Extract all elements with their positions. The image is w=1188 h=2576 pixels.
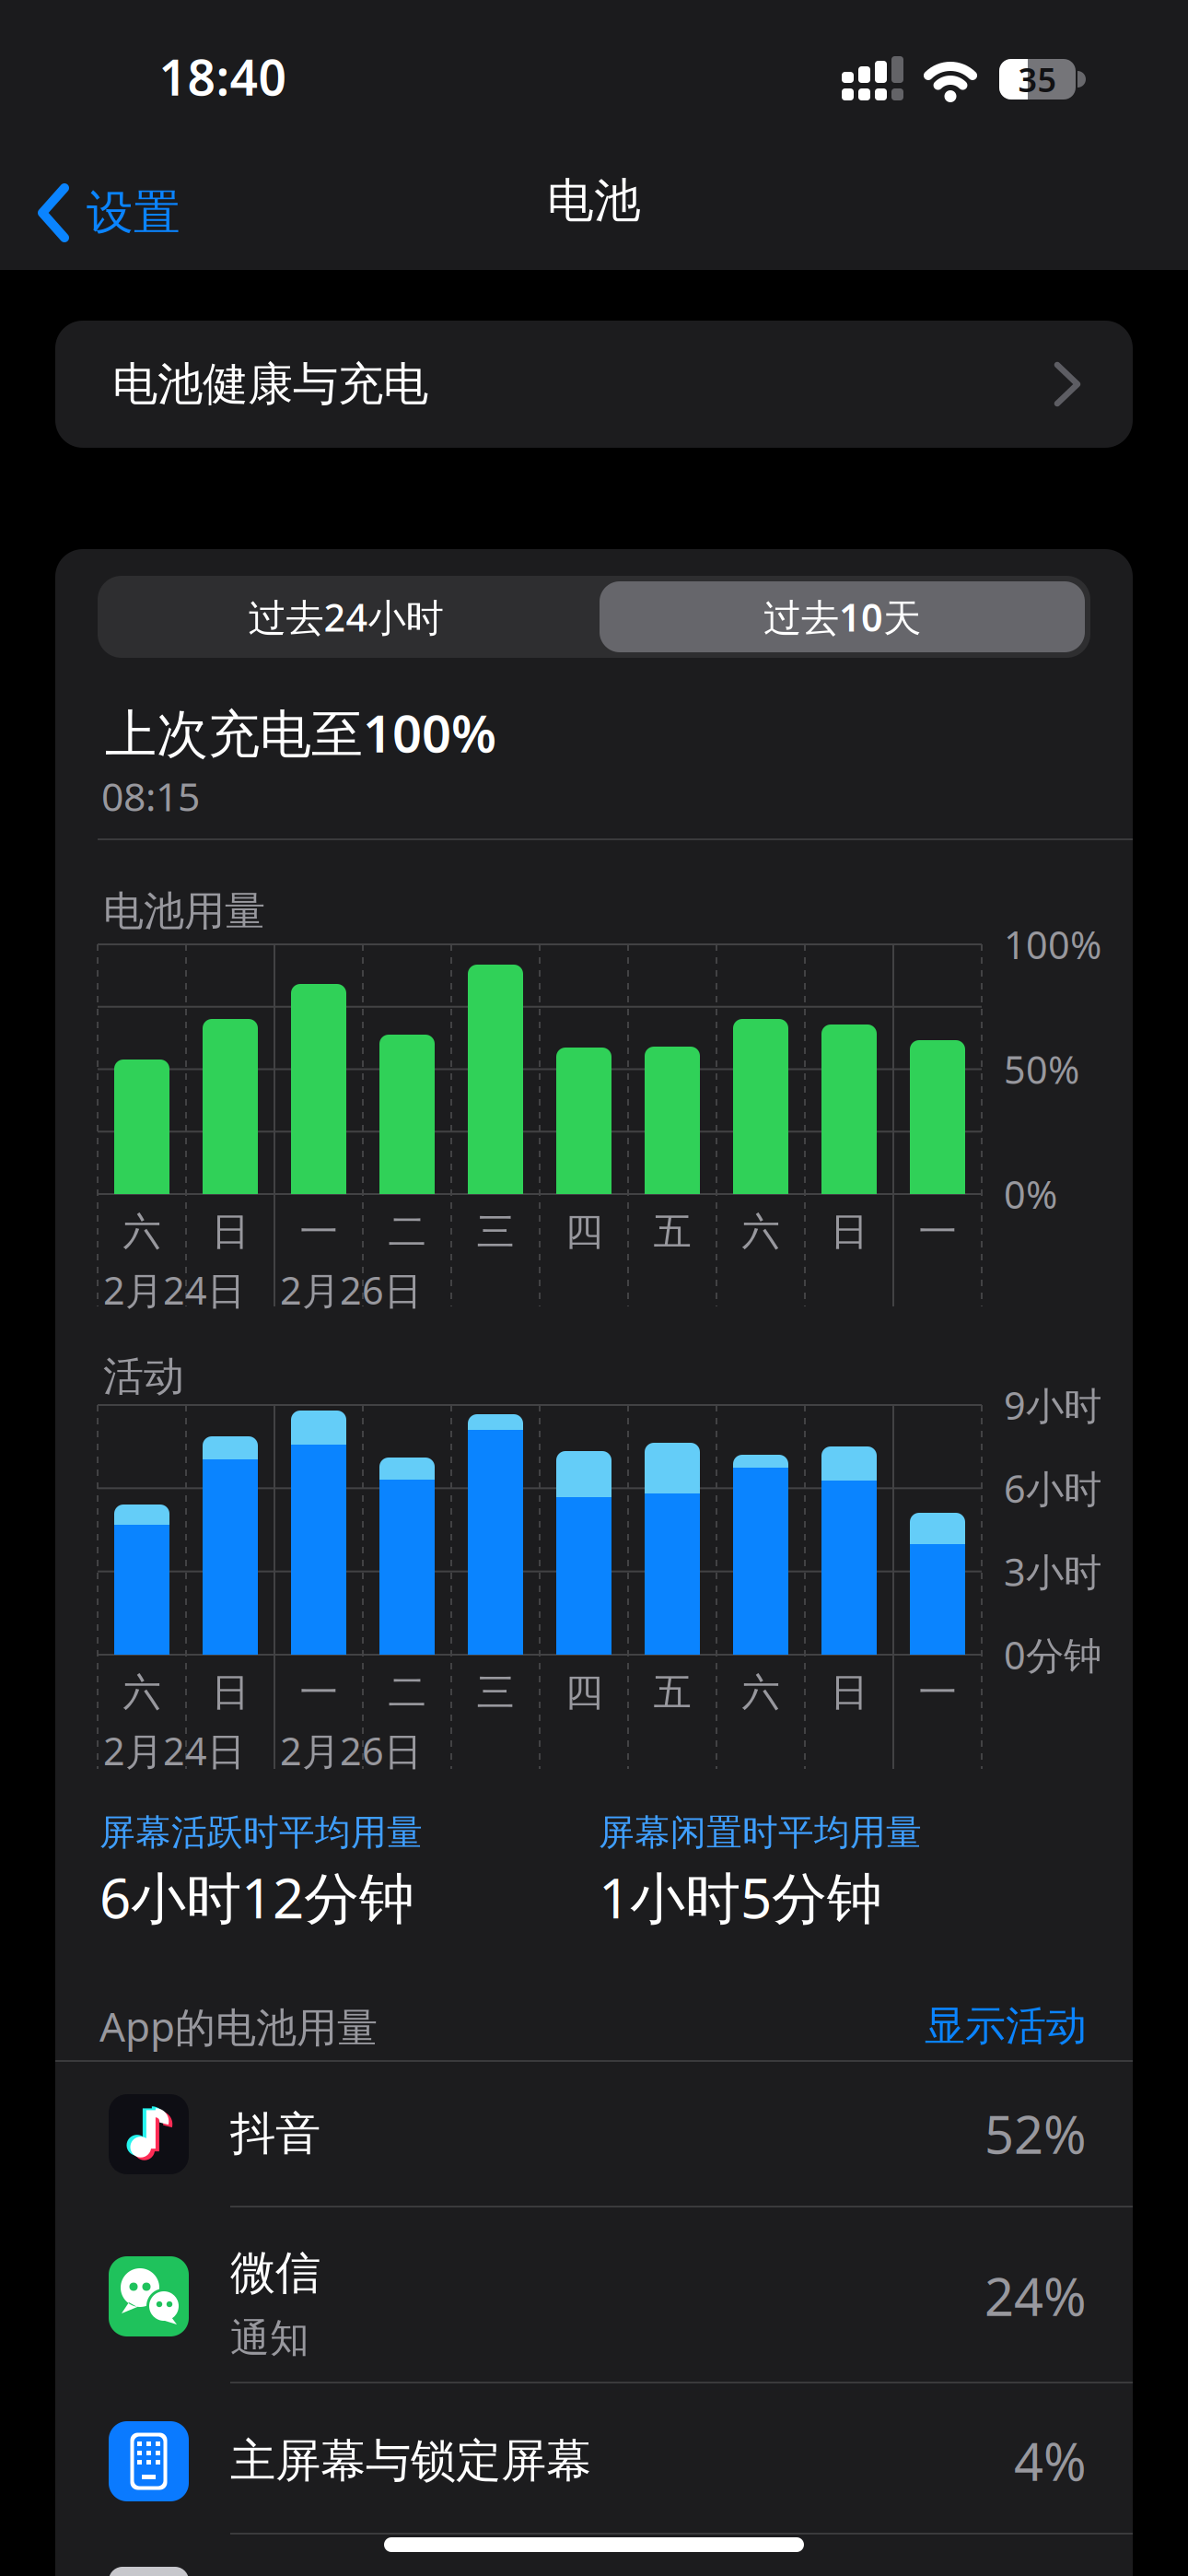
staticText: 电池 [547, 172, 641, 229]
staticText: 1小时5分钟 [599, 1860, 882, 1934]
staticText: 活动 [103, 1352, 184, 1401]
staticText: 抖音 [230, 2106, 320, 2162]
staticText: 主屏幕与锁定屏幕 [230, 2433, 591, 2489]
staticText: 100% [1004, 919, 1101, 970]
button[interactable]: 抖音 [55, 2062, 1133, 2206]
staticText: 0% [1004, 1169, 1057, 1219]
staticText: 日 [211, 1669, 249, 1716]
staticText: 日 [830, 1669, 868, 1716]
staticText: 电池健康与充电 [112, 356, 428, 412]
staticText: 二 [388, 1208, 426, 1255]
button[interactable]: 主屏幕与锁定屏幕 [55, 2383, 1133, 2533]
staticText: 3小时 [1004, 1546, 1101, 1597]
staticText: 设置 [87, 184, 181, 241]
staticText: 24% [984, 2262, 1087, 2330]
staticText: 08:15 [101, 770, 200, 822]
staticText: 2月26日 [280, 1725, 422, 1776]
staticText: 五 [653, 1208, 691, 1255]
staticText: 4% [1014, 2427, 1087, 2495]
staticText: 三 [477, 1669, 514, 1716]
staticText: 一 [919, 1669, 956, 1716]
staticText: 6小时 [1004, 1463, 1101, 1514]
staticText: 52% [984, 2099, 1087, 2168]
staticText: 过去24小时 [248, 592, 443, 642]
staticText: 一 [300, 1208, 338, 1255]
staticText: 二 [388, 1669, 426, 1716]
staticText: 四 [565, 1669, 603, 1716]
staticText: 0分钟 [1004, 1629, 1101, 1680]
staticText: 6小时12分钟 [99, 1860, 414, 1934]
staticText: 显示活动 [925, 2001, 1087, 2051]
staticText: 2月24日 [103, 1725, 245, 1776]
staticText: 日 [211, 1208, 249, 1255]
staticText: 微信 [230, 2245, 320, 2301]
staticText: 2月26日 [280, 1265, 422, 1315]
staticText: 18:40 [159, 44, 287, 109]
staticText: 六 [123, 1208, 161, 1255]
staticText: 一 [300, 1669, 338, 1716]
staticText: 屏幕活跃时平均用量 [99, 1811, 423, 1854]
staticText: App的电池用量 [99, 1999, 378, 2053]
staticText: 三 [477, 1208, 514, 1255]
staticText: 六 [742, 1669, 780, 1716]
staticText: 上次充电至100% [105, 698, 496, 767]
staticText: 六 [123, 1669, 161, 1716]
button[interactable]: 过去24小时 [98, 576, 594, 658]
staticText: 六 [742, 1208, 780, 1255]
button[interactable]: 显示活动 [810, 2000, 1087, 2052]
staticText: 50% [1004, 1044, 1079, 1095]
staticText: 日 [830, 1208, 868, 1255]
staticText: 过去10天 [763, 592, 921, 642]
button[interactable]: 电池健康与充电 [55, 321, 1133, 448]
staticText: 2月24日 [103, 1265, 245, 1315]
staticText: 电池用量 [103, 886, 265, 936]
button[interactable]: 过去10天 [594, 576, 1090, 658]
staticText: 屏幕闲置时平均用量 [599, 1811, 922, 1854]
staticText: 一 [919, 1208, 956, 1255]
staticText: 四 [565, 1208, 603, 1255]
button[interactable]: 设置 [37, 171, 239, 254]
staticText: 35 [1018, 57, 1057, 101]
staticText: 通知 [230, 2314, 309, 2362]
staticText: 9小时 [1004, 1380, 1101, 1430]
button[interactable]: 微信 [55, 2207, 1133, 2382]
staticText: 五 [653, 1669, 691, 1716]
